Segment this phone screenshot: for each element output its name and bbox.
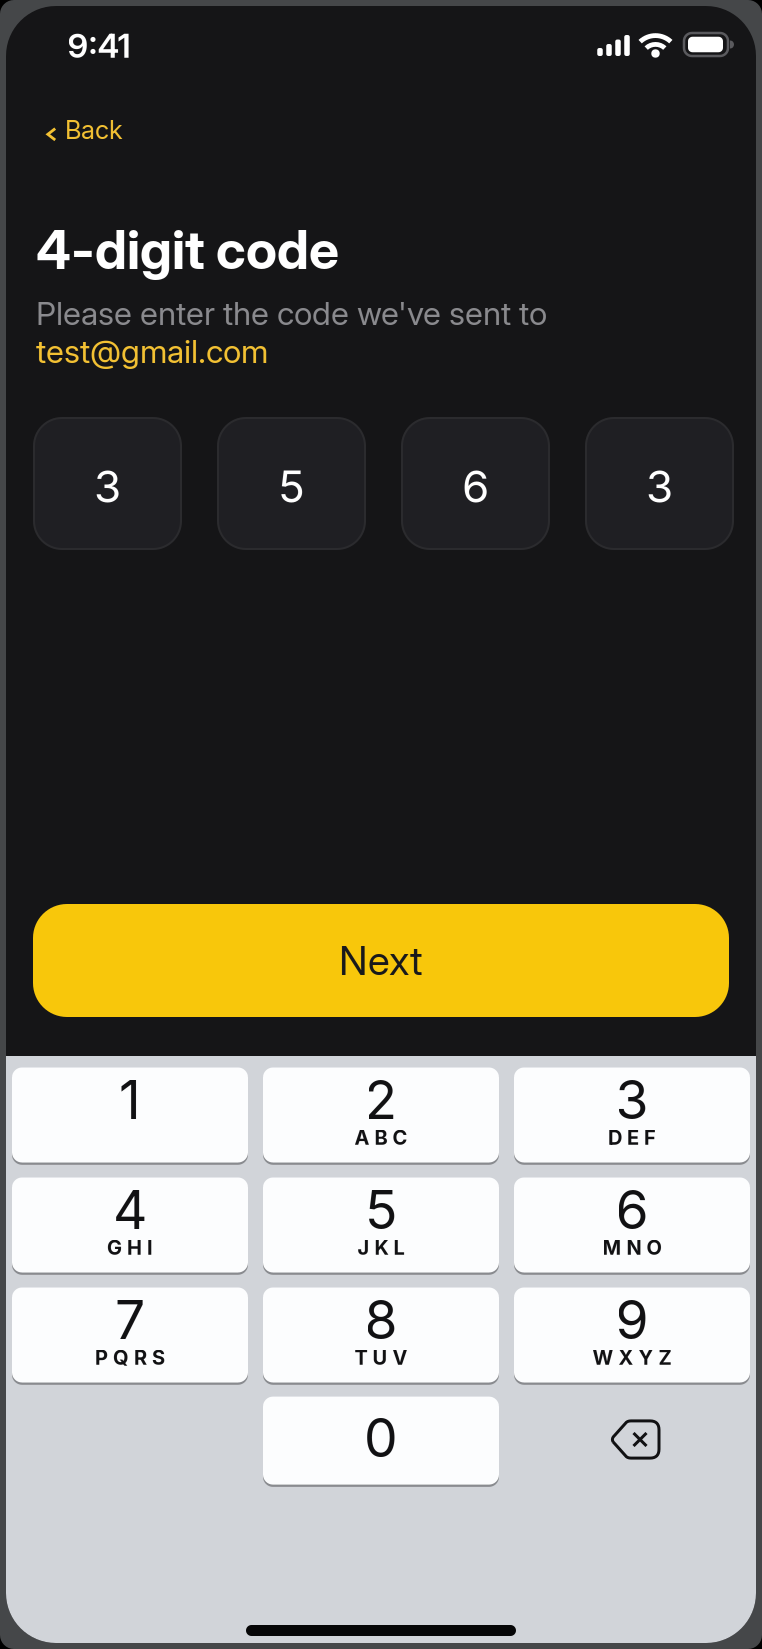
staticText: 7	[115, 1288, 145, 1351]
staticText: 6	[462, 460, 489, 512]
staticText: 3	[615, 1068, 648, 1131]
button[interactable]: Back	[36, 110, 136, 150]
staticText: 9	[615, 1288, 648, 1351]
staticText: G H I	[107, 1236, 153, 1259]
staticText: P Q R S	[95, 1346, 165, 1369]
staticText: 5	[365, 1178, 397, 1241]
button[interactable]: 7	[12, 1287, 248, 1385]
staticText: test@gmail.com	[36, 332, 268, 370]
staticText: Next	[339, 937, 423, 984]
staticText: A B C	[354, 1126, 407, 1149]
staticText: 3	[646, 460, 673, 512]
button[interactable]: 1	[12, 1067, 248, 1165]
staticText: D E F	[608, 1126, 656, 1149]
button[interactable]: 3	[514, 1067, 750, 1165]
staticText: 3	[94, 460, 121, 512]
staticText: 4	[113, 1178, 147, 1241]
button[interactable]: 2	[263, 1067, 499, 1165]
button[interactable]: 8	[263, 1287, 499, 1385]
staticText: 2	[364, 1068, 397, 1131]
staticText: 4-digit code	[36, 217, 339, 282]
button[interactable]: Next	[33, 904, 729, 1017]
staticText: Back	[65, 115, 123, 145]
staticText: 6	[615, 1178, 648, 1241]
button[interactable]: Delete	[606, 1416, 664, 1462]
button[interactable]: Home	[246, 1625, 516, 1636]
button[interactable]: 5	[263, 1177, 499, 1275]
staticText: 8	[364, 1288, 397, 1351]
staticText: 0	[364, 1406, 398, 1469]
button[interactable]: 4	[12, 1177, 248, 1275]
staticText: J K L	[357, 1236, 404, 1259]
staticText: W X Y Z	[592, 1346, 671, 1369]
staticText: T U V	[354, 1346, 407, 1369]
button[interactable]: 0	[263, 1397, 499, 1487]
staticText: M N O	[602, 1236, 661, 1259]
button[interactable]: 9	[514, 1287, 750, 1385]
staticText: Please enter the code we've sent to	[36, 294, 547, 332]
staticText: 9:41	[67, 26, 130, 65]
staticText: 1	[119, 1068, 141, 1131]
staticText: 5	[278, 460, 305, 512]
button[interactable]: 6	[514, 1177, 750, 1275]
